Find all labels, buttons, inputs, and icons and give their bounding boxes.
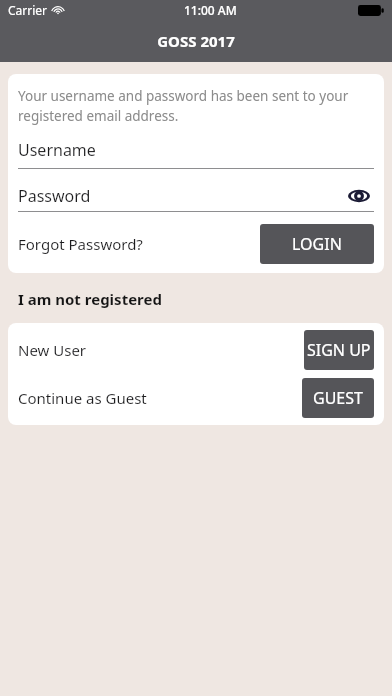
staticText: Your username and password has been sent… [18, 87, 374, 125]
staticText: LOGIN [292, 233, 342, 255]
staticText: Username [18, 139, 96, 161]
button[interactable]: LOGIN [260, 224, 374, 264]
staticText: Password [18, 185, 91, 207]
staticText: Carrier [8, 2, 48, 18]
button[interactable]: Show password [344, 181, 374, 211]
staticText: I am not registered [18, 289, 162, 309]
button[interactable]: New User [18, 340, 304, 360]
staticText: SIGN UP [307, 339, 371, 361]
staticText: 11:00 AM [184, 2, 237, 18]
staticText: GUEST [313, 387, 363, 409]
staticText: Forgot Password? [18, 234, 143, 254]
button[interactable]: Password [18, 185, 344, 207]
staticText: GOSS 2017 [157, 31, 235, 51]
button[interactable]: GUEST [302, 378, 374, 418]
staticText: New User [18, 340, 87, 360]
staticText: Continue as Guest [18, 388, 147, 408]
button[interactable]: SIGN UP [304, 330, 374, 370]
button[interactable]: Forgot Password? [18, 234, 260, 254]
button[interactable]: Continue as Guest [18, 388, 302, 408]
button[interactable]: Username [18, 139, 374, 169]
